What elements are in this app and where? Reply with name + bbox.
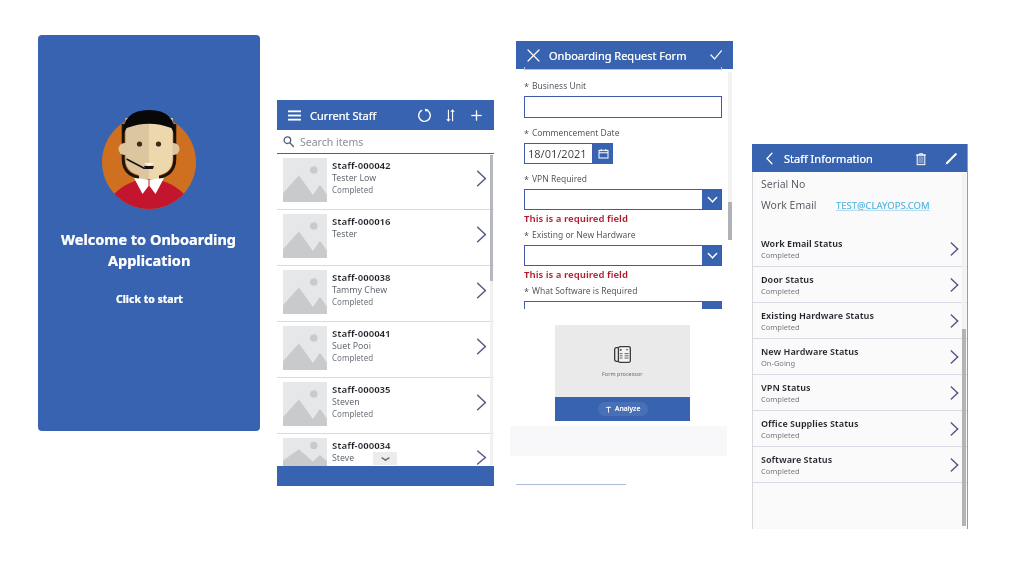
- staticText: Staff Information: [784, 151, 873, 166]
- staticText: Serial No: [761, 177, 806, 191]
- button[interactable]: Welcome to Onboarding: [38, 35, 260, 431]
- staticText: Completed: [761, 322, 800, 332]
- staticText: Door Status: [761, 273, 814, 285]
- staticText: Completed: [332, 184, 374, 195]
- staticText: Staff-000042: [332, 159, 391, 172]
- staticText: Completed: [761, 286, 800, 296]
- button[interactable]: Staff-000038: [277, 266, 494, 321]
- button[interactable]: 18/01/2021: [524, 143, 593, 164]
- staticText: Work Email: [761, 198, 817, 212]
- staticText: What Software is Required: [532, 285, 638, 297]
- staticText: VPN Required: [532, 173, 588, 185]
- button[interactable]: Edit: [943, 150, 960, 167]
- staticText: Staff-000016: [332, 215, 391, 228]
- staticText: Existing Hardware Status: [761, 309, 874, 321]
- button[interactable]: Back: [761, 150, 777, 166]
- staticText: This is a required field: [524, 212, 628, 225]
- staticText: Tester: [332, 228, 358, 240]
- staticText: Search items: [300, 135, 364, 149]
- staticText: *: [524, 285, 529, 297]
- button[interactable]: [524, 245, 722, 266]
- button[interactable]: Close: [525, 47, 541, 63]
- staticText: Staff-000041: [332, 327, 391, 340]
- staticText: Steven: [332, 396, 360, 408]
- staticText: *: [524, 229, 529, 241]
- button[interactable]: Search items: [277, 130, 494, 153]
- staticText: On-Going: [761, 358, 796, 368]
- button[interactable]: Scroll down: [373, 452, 397, 465]
- staticText: Staff-000034: [332, 439, 391, 452]
- staticText: Steve: [332, 452, 355, 464]
- staticText: Completed: [332, 352, 374, 363]
- staticText: TEST@CLAYOPS.COM: [836, 199, 930, 212]
- staticText: Completed: [761, 394, 800, 404]
- staticText: Existing or New Hardware: [532, 229, 636, 241]
- staticText: Onboarding Request Form: [549, 48, 687, 63]
- staticText: Welcome to Onboarding: [61, 229, 237, 249]
- button[interactable]: VPN Status: [752, 375, 968, 410]
- staticText: Form processor: [602, 370, 643, 377]
- button[interactable]: [524, 96, 722, 118]
- staticText: Application: [108, 250, 191, 270]
- button[interactable]: Pick date: [593, 143, 613, 164]
- staticText: Software Status: [761, 453, 833, 465]
- button[interactable]: Existing Hardware Status: [752, 303, 968, 338]
- staticText: *: [524, 127, 529, 139]
- staticText: New Hardware Status: [761, 345, 859, 357]
- staticText: Completed: [332, 296, 374, 307]
- staticText: VPN Status: [761, 381, 811, 393]
- staticText: Current Staff: [310, 108, 377, 123]
- staticText: This is a required field: [524, 268, 628, 281]
- button[interactable]: Door Status: [752, 267, 968, 302]
- button[interactable]: [524, 189, 722, 210]
- button[interactable]: Submit: [708, 47, 724, 63]
- button[interactable]: Delete: [912, 150, 929, 167]
- staticText: Click to start: [116, 292, 183, 306]
- button[interactable]: Staff-000035: [277, 378, 494, 433]
- button[interactable]: [524, 301, 722, 309]
- staticText: Completed: [761, 430, 800, 440]
- staticText: *: [524, 173, 529, 185]
- staticText: Completed: [332, 408, 374, 419]
- staticText: Office Supplies Status: [761, 417, 859, 429]
- staticText: Staff-000038: [332, 271, 391, 284]
- staticText: Tammy Chew: [332, 284, 388, 296]
- staticText: Completed: [761, 250, 800, 260]
- button[interactable]: Software Status: [752, 447, 968, 482]
- staticText: Completed: [761, 466, 800, 476]
- button[interactable]: Staff-000016: [277, 210, 494, 265]
- button[interactable]: Sort: [441, 106, 459, 124]
- staticText: Work Email Status: [761, 237, 843, 249]
- staticText: Staff-000035: [332, 383, 391, 396]
- button[interactable]: Refresh: [415, 106, 433, 124]
- staticText: Commencement Date: [532, 127, 620, 139]
- staticText: Business Unit: [532, 80, 587, 92]
- staticText: 18/01/2021: [528, 146, 587, 161]
- staticText: *: [524, 80, 529, 92]
- button[interactable]: Staff-000041: [277, 322, 494, 377]
- button[interactable]: Work Email Status: [752, 231, 968, 266]
- staticText: Analyze: [615, 404, 641, 414]
- button[interactable]: Analyze: [555, 397, 690, 421]
- button[interactable]: New Hardware Status: [752, 339, 968, 374]
- button[interactable]: Add: [467, 106, 485, 124]
- staticText: Suet Pooi: [332, 340, 371, 352]
- button[interactable]: Office Supplies Status: [752, 411, 968, 446]
- button[interactable]: Staff-000034: [277, 434, 494, 466]
- staticText: Tester Low: [332, 172, 377, 184]
- button[interactable]: Staff-000042: [277, 154, 494, 209]
- button[interactable]: Menu: [286, 107, 302, 123]
